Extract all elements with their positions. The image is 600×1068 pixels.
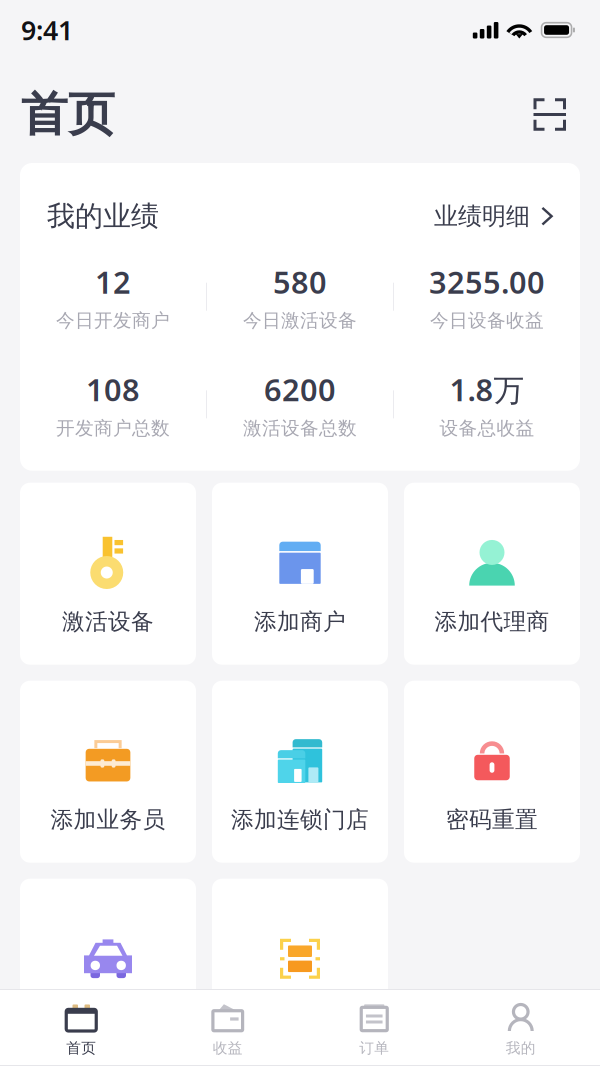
button[interactable]: 收益 [154,989,301,1065]
staticText: 我的 [506,1039,536,1057]
button[interactable]: 添加连锁门店 [212,681,388,863]
staticText: 今日激活设备 [243,309,357,332]
staticText: 激活设备总数 [243,417,357,440]
staticText: 9:41 [21,12,73,48]
staticText: 收益 [213,1039,243,1057]
staticText: 添加代理商 [434,608,549,636]
button[interactable]: 我的 [447,989,594,1065]
staticText: 首页 [66,1039,96,1057]
staticText: 设备总收益 [439,417,534,440]
button[interactable]: 订单 [301,989,447,1065]
button[interactable]: 首页 [8,989,154,1065]
button[interactable]: 添加业务员 [20,681,196,863]
staticText: 激活设备 [62,608,154,636]
button[interactable]: 业绩明细 [434,201,553,231]
staticText: 开发商户总数 [56,417,170,440]
staticText: 580 [273,261,327,302]
staticText: 3255.00 [429,261,545,302]
staticText: 今日开发商户 [56,309,170,332]
staticText: 汽车服务 [62,1004,154,1032]
button[interactable]: 密码重置 [404,681,580,863]
staticText: 密码重置 [446,806,538,834]
staticText: 添加商户 [254,608,346,636]
staticText: 业绩明细 [434,201,530,231]
staticText: 添加连锁门店 [231,806,369,834]
button[interactable]: 添加代理商 [404,483,580,665]
staticText: 1.8万 [449,369,524,410]
button[interactable]: 激活设备 [20,483,196,665]
staticText: 我的业绩 [47,199,159,233]
button[interactable]: Scan [527,92,572,137]
staticText: 订单 [359,1039,389,1057]
staticText: 添加业务员 [50,806,165,834]
staticText: 首页 [21,86,115,143]
staticText: 今日设备收益 [430,309,544,332]
button[interactable]: 汽车服务 [20,879,196,1061]
button[interactable]: 扫码核销 [212,879,388,1061]
staticText: 12 [95,261,131,302]
staticText: 6200 [264,369,336,410]
staticText: 108 [86,369,140,410]
button[interactable]: 添加商户 [212,483,388,665]
